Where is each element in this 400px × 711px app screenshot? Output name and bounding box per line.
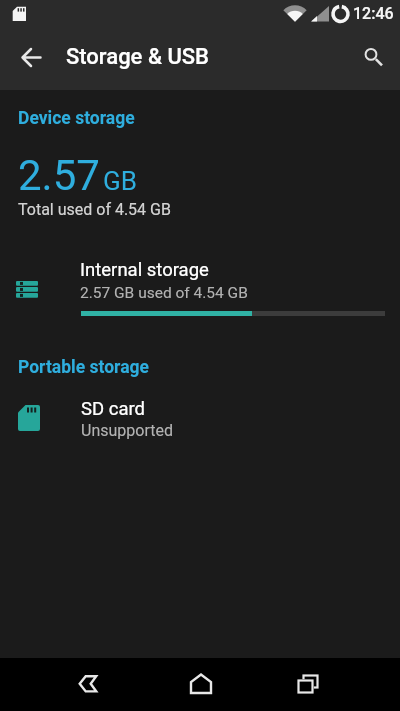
staticText: Storage & USB bbox=[66, 44, 209, 70]
button[interactable]: SD card bbox=[0, 390, 400, 446]
staticText: 12:46 bbox=[353, 4, 394, 23]
staticText: Device storage bbox=[18, 108, 135, 129]
staticText: Unsupported bbox=[81, 421, 173, 440]
staticText: Total used of 4.54 GB bbox=[18, 200, 171, 219]
button[interactable]: Internal storage bbox=[0, 246, 400, 326]
staticText: 2.57 GB used of 4.54 GB bbox=[80, 284, 248, 302]
staticText: Internal storage bbox=[80, 259, 209, 281]
button[interactable] bbox=[11, 38, 51, 78]
staticText: GB bbox=[103, 166, 137, 196]
staticText: 2.57 bbox=[18, 151, 100, 200]
button[interactable] bbox=[62, 658, 114, 711]
button[interactable] bbox=[351, 40, 391, 80]
button[interactable] bbox=[281, 658, 333, 711]
staticText: Portable storage bbox=[18, 357, 150, 378]
button[interactable] bbox=[175, 658, 227, 711]
staticText: SD card bbox=[81, 398, 145, 420]
